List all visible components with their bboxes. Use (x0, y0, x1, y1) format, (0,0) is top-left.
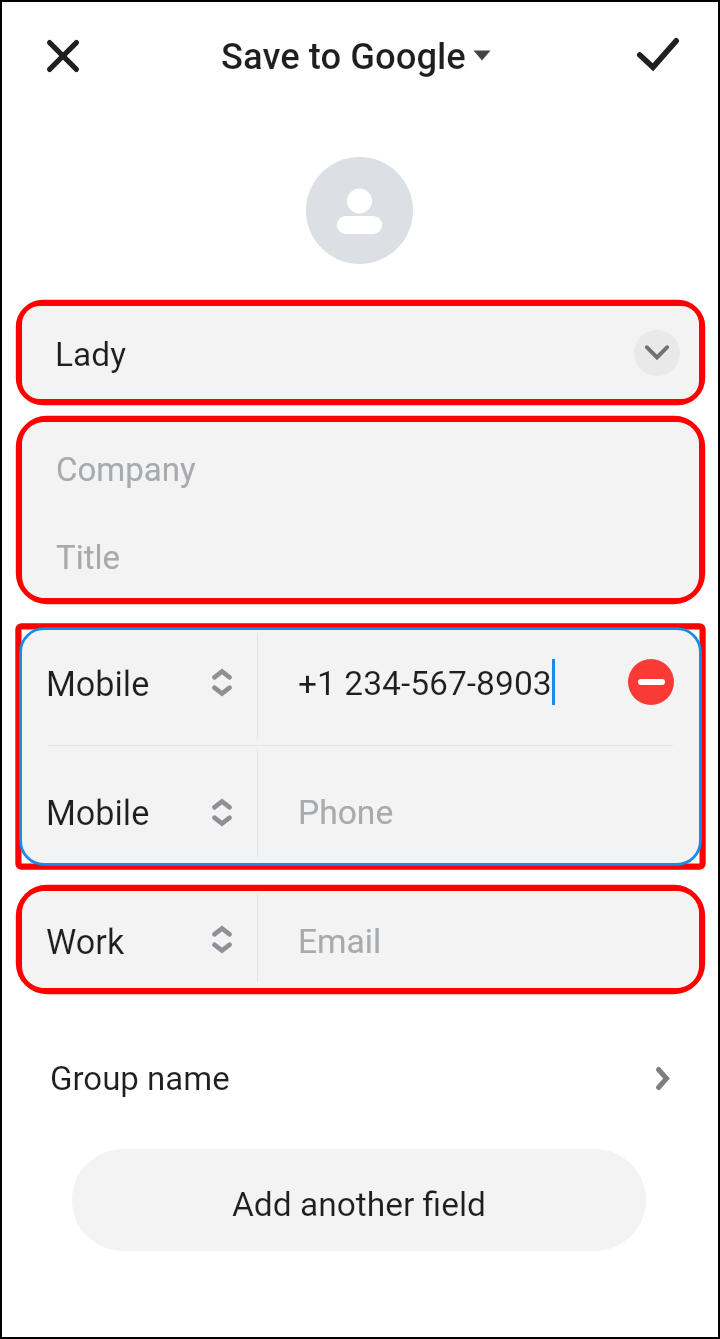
button[interactable]: Save (632, 34, 684, 86)
button[interactable]: Remove phone number (628, 659, 674, 705)
staticText: Add another field (232, 1185, 486, 1224)
button[interactable]: +1 234-567-8903 (258, 630, 699, 745)
staticText: Email (298, 922, 382, 961)
button[interactable]: Title (22, 510, 699, 598)
button[interactable]: Add photo (306, 157, 413, 264)
button[interactable]: Company (22, 422, 699, 510)
button[interactable]: Expand name fields (634, 330, 680, 376)
staticText: Mobile (46, 664, 150, 704)
button[interactable]: Email (258, 891, 699, 988)
staticText: +1 234-567-8903 (298, 664, 552, 703)
staticText: Title (56, 538, 121, 577)
button[interactable]: Phone (258, 746, 699, 863)
button[interactable]: Work (22, 891, 257, 988)
button[interactable]: Add another field (72, 1149, 646, 1251)
staticText: Group name (50, 1059, 230, 1098)
button[interactable]: Save to Google (210, 26, 506, 86)
button[interactable]: Mobile (22, 630, 257, 745)
button[interactable]: Close (30, 23, 95, 88)
staticText: Lady (55, 335, 127, 374)
staticText: Mobile (46, 793, 150, 833)
button[interactable]: Group name (0, 1042, 720, 1114)
staticText: Work (46, 922, 125, 962)
staticText: Save to Google (221, 35, 466, 78)
button[interactable]: Mobile (22, 746, 257, 863)
staticText: Company (56, 450, 196, 489)
button[interactable]: Lady (22, 306, 699, 399)
staticText: Phone (298, 793, 394, 832)
